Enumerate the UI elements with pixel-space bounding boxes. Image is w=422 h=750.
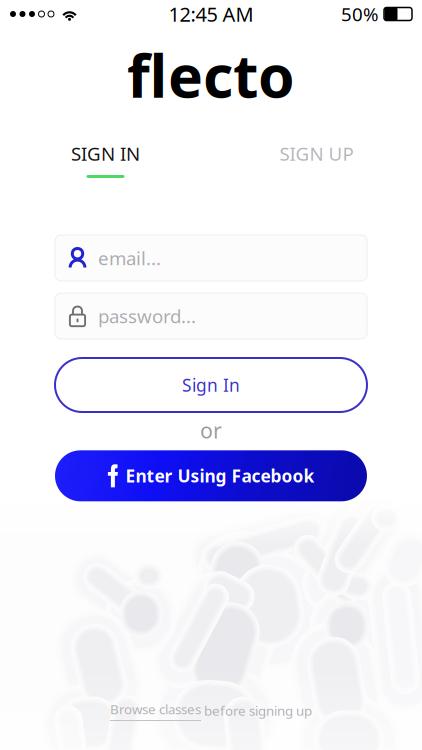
staticText: Browse classes (110, 700, 201, 718)
staticText: password... (98, 304, 196, 328)
staticText: flecto (127, 36, 295, 114)
staticText: 50% (341, 2, 379, 26)
staticText: 12:45 AM (168, 1, 253, 27)
staticText: Sign In (182, 373, 240, 396)
staticText: email... (98, 246, 161, 270)
staticText: or (200, 416, 222, 444)
button[interactable]: SIGN IN (0, 127, 211, 178)
button[interactable]: Browse classes (102, 695, 320, 726)
staticText: SIGN IN (71, 141, 140, 166)
button[interactable]: SIGN UP (211, 127, 422, 178)
staticText: SIGN UP (279, 141, 353, 166)
staticText: before signing up (201, 702, 312, 719)
staticText: Enter Using Facebook (125, 464, 314, 487)
button[interactable]: Enter Using Facebook (55, 450, 367, 501)
button[interactable]: Sign In (55, 358, 367, 412)
